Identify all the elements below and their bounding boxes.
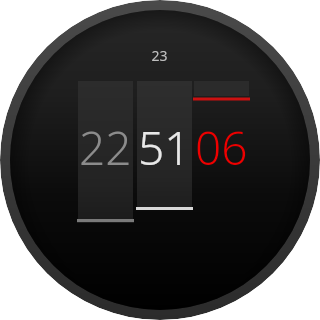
button[interactable]: Flip clock watch face — [0, 0, 320, 320]
